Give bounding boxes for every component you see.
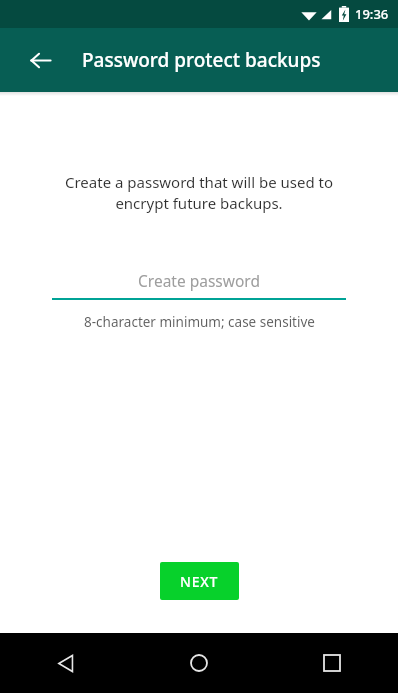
staticText: 8-character minimum; case sensitive — [84, 313, 315, 331]
button[interactable]: Recent apps — [265, 633, 398, 693]
staticText: Create password — [138, 270, 260, 291]
button[interactable]: Home — [132, 633, 265, 693]
staticText: 19:36 — [355, 5, 389, 23]
button[interactable]: Back — [0, 633, 132, 693]
button[interactable]: Back — [16, 36, 64, 84]
staticText: Password protect backups — [82, 47, 321, 73]
staticText: Create a password that will be used to e… — [32, 172, 366, 214]
button[interactable]: Create password — [52, 270, 346, 300]
staticText: NEXT — [180, 572, 219, 591]
button[interactable]: NEXT — [160, 562, 239, 600]
